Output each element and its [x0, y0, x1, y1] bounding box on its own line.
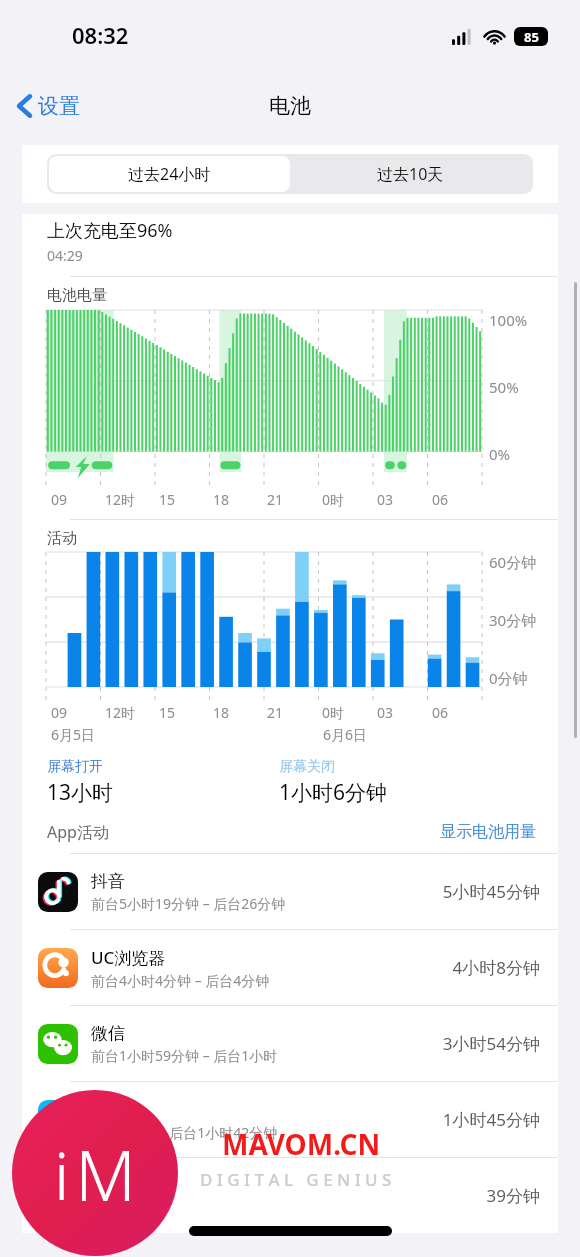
staticText: 13小时 [47, 778, 114, 807]
staticText: 0时 [322, 703, 345, 722]
staticText: 06 [432, 490, 449, 509]
staticText: 1小时6分钟 [279, 778, 388, 807]
staticText: i [54, 1129, 70, 1219]
staticText: 100% [489, 310, 528, 330]
staticText: 过去10天 [377, 163, 444, 185]
staticText: 08:32 [72, 20, 129, 50]
staticText: 微信 [91, 1023, 125, 1044]
staticText: 6月5日 [51, 725, 96, 744]
staticText: 前台1小时59分钟 – 后台1小时 [91, 1046, 278, 1065]
staticText: 15 [159, 490, 176, 509]
staticText: 60分钟 [489, 552, 537, 572]
staticText: 虎牙直播 [91, 1185, 159, 1206]
staticText: 3小时54分钟 [442, 1032, 540, 1055]
staticText: M [75, 1126, 137, 1221]
staticText: UC浏览器 [91, 946, 166, 969]
staticText: 09 [51, 703, 68, 722]
staticText: 85 [524, 28, 539, 46]
staticText: 18 [213, 490, 230, 509]
staticText: 6月6日 [323, 725, 368, 744]
staticText: 0分钟 [489, 668, 528, 688]
staticText: 设置 [38, 93, 80, 119]
button[interactable]: 过去10天 [290, 156, 531, 192]
button[interactable]: 设置 [10, 87, 88, 125]
staticText: 抖音 [91, 871, 125, 892]
button[interactable]: 微信 [22, 1006, 558, 1081]
button[interactable]: QQ [22, 1082, 558, 1157]
staticText: 显示电池用量 [440, 822, 536, 842]
staticText: 15 [159, 703, 176, 722]
staticText: 09 [51, 490, 68, 509]
staticText: 18 [213, 703, 230, 722]
staticText: 上次充电至96% [47, 218, 173, 243]
staticText: 21 [267, 490, 284, 509]
staticText: 50% [489, 377, 519, 397]
staticText: 0时 [322, 490, 345, 509]
staticText: 前台4小时4分钟 – 后台4分钟 [91, 971, 270, 990]
staticText: 06 [432, 703, 449, 722]
button[interactable]: 抖音 [22, 854, 558, 929]
staticText: 过去24小时 [128, 163, 211, 185]
staticText: 屏幕关闭 [279, 758, 335, 776]
staticText: 活动 [47, 529, 77, 548]
staticText: App活动 [47, 821, 109, 843]
staticText: 5小时45分钟 [442, 880, 540, 903]
staticText: 电池 [269, 93, 311, 119]
staticText: 30分钟 [489, 610, 537, 630]
staticText: 电池电量 [47, 286, 107, 305]
staticText: 前台3分钟 – 后台1小时42分钟 [91, 1123, 278, 1142]
staticText: D I G I T A L G E N I U S [200, 1168, 392, 1191]
staticText: 0% [489, 444, 511, 464]
staticText: 39分钟 [486, 1184, 540, 1207]
staticText: 03 [377, 490, 394, 509]
staticText: 4小时8分钟 [452, 956, 540, 979]
staticText: 21 [267, 703, 284, 722]
staticText: 屏幕打开 [47, 758, 103, 776]
staticText: MAVOM.CN [222, 1125, 381, 1163]
staticText: 04:29 [47, 246, 83, 265]
staticText: 前台5小时19分钟 – 后台26分钟 [91, 894, 286, 913]
button[interactable]: 过去24小时 [49, 156, 290, 192]
staticText: 03 [377, 703, 394, 722]
button[interactable]: 虎牙直播 [22, 1158, 558, 1233]
button[interactable]: 显示电池用量 [440, 822, 536, 842]
staticText: 12时 [105, 490, 136, 509]
staticText: 1小时45分钟 [442, 1108, 540, 1131]
button[interactable]: UC浏览器 [22, 930, 558, 1005]
staticText: 12时 [105, 703, 136, 722]
